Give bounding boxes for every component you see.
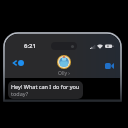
button[interactable]: Video call <box>105 63 114 69</box>
staticText: Olly › <box>58 70 70 77</box>
button[interactable]: Olly › <box>57 55 71 77</box>
staticText: Hey! What can I do for you <box>11 83 80 90</box>
staticText: 6:21 <box>24 42 36 50</box>
staticText: today? <box>11 90 29 97</box>
button[interactable]: Back <box>13 60 24 66</box>
button[interactable]: Hey! What can I do for you <box>11 83 80 97</box>
